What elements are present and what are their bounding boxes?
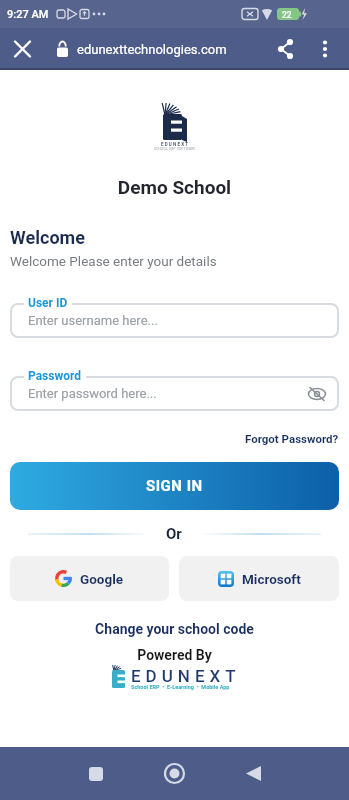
staticText: EDUNEXT	[131, 666, 241, 686]
staticText: Powered By	[0, 647, 349, 663]
staticText: edunexttechnologies.com	[77, 42, 227, 57]
staticText: Google	[80, 571, 124, 587]
button[interactable]: Google	[10, 556, 169, 601]
button[interactable]: Microsoft	[179, 556, 339, 601]
button[interactable]: Change your school code	[0, 621, 349, 637]
staticText: 22	[282, 10, 292, 20]
staticText: SCHOOL ERP SOFTWARE	[154, 147, 196, 151]
staticText: Or	[166, 525, 182, 543]
button[interactable]	[69, 747, 122, 800]
staticText: EDUNEXT	[161, 142, 190, 147]
button[interactable]: Enter password here...	[10, 376, 339, 411]
staticText: User ID	[28, 296, 68, 310]
staticText: Demo School	[0, 176, 349, 198]
staticText: Enter username here...	[28, 313, 158, 328]
button[interactable]	[0, 28, 44, 70]
button[interactable]	[227, 747, 280, 800]
button[interactable]: Enter username here...	[10, 303, 339, 338]
button[interactable]: SIGN IN	[10, 462, 339, 510]
staticText: Enter password here...	[28, 386, 157, 401]
staticText: Microsoft	[242, 571, 301, 587]
staticText: SIGN IN	[146, 477, 203, 495]
button[interactable]	[148, 747, 201, 800]
staticText: 9:27 AM	[7, 8, 49, 21]
staticText: School ERP • E-Learning • Mobile App	[131, 684, 230, 690]
staticText: Password	[28, 369, 82, 383]
staticText: Welcome	[10, 227, 85, 248]
staticText: Welcome Please enter your details	[10, 253, 217, 269]
button[interactable]: Forgot Password?	[245, 432, 339, 445]
